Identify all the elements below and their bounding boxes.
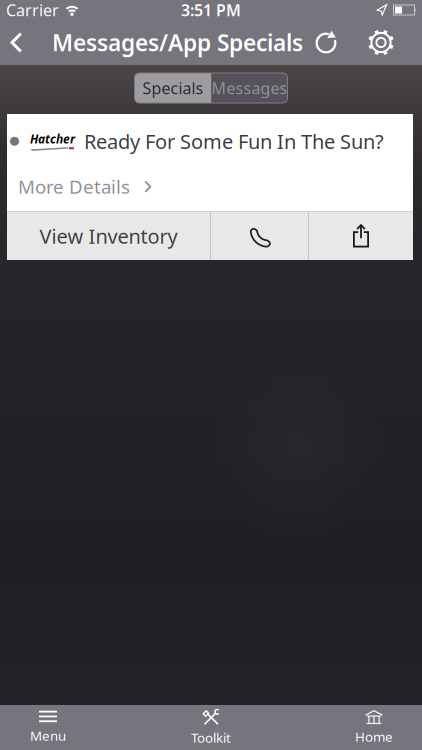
button[interactable]: Share [309,212,413,260]
button[interactable]: Specials [134,73,211,103]
button[interactable]: Refresh [314,20,367,64]
button[interactable]: Menu [0,705,96,750]
button[interactable]: View Inventory [7,212,210,260]
button[interactable]: Messages [211,73,287,103]
button[interactable]: Call [211,212,308,260]
staticText: Carrier [6,0,59,21]
staticText: Hatcher [30,131,75,147]
button[interactable]: Settings [367,20,422,64]
staticText: Toolkit [191,729,231,746]
button[interactable]: Toolkit [163,705,259,750]
staticText: Home [355,728,393,745]
staticText: View Inventory [39,223,177,249]
staticText: Menu [30,727,66,744]
staticText: 3:51 PM [181,0,241,21]
staticText: Ready For Some Fun In The Sun? [84,128,384,155]
staticText: Specials [142,77,203,99]
button[interactable]: Back [0,20,41,64]
staticText: Messages/App Specials [52,27,303,57]
staticText: More Details [18,174,130,199]
staticText: Messages [211,77,287,99]
button[interactable]: More Details [7,174,152,211]
button[interactable]: Home [326,705,422,750]
